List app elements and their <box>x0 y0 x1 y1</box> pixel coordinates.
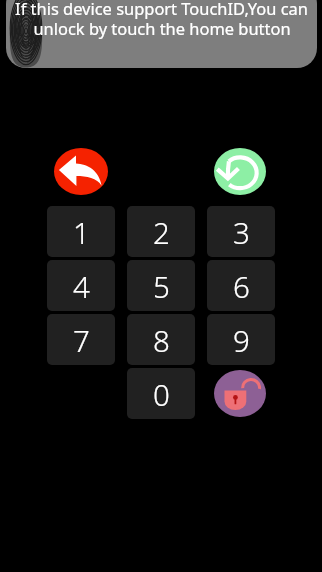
staticText: 7 <box>73 320 90 360</box>
staticText: 9 <box>233 320 250 360</box>
staticText: If this device support TouchID,You can <box>15 0 308 19</box>
button[interactable]: 3 <box>207 206 275 257</box>
staticText: 5 <box>153 266 170 306</box>
staticText: 3 <box>233 212 250 252</box>
staticText: 1 <box>73 212 90 252</box>
button[interactable]: 8 <box>127 314 195 365</box>
staticText: 6 <box>233 266 250 306</box>
button[interactable]: Refresh <box>214 148 266 195</box>
staticText: unlock by touch the home button <box>33 17 291 39</box>
staticText: 2 <box>153 212 170 252</box>
button[interactable]: 9 <box>207 314 275 365</box>
staticText: 8 <box>153 320 170 360</box>
button[interactable]: 4 <box>47 260 115 311</box>
button[interactable]: Unlock <box>214 370 266 417</box>
button[interactable]: 7 <box>47 314 115 365</box>
staticText: 0 <box>153 374 170 414</box>
staticText: 4 <box>73 266 90 306</box>
button[interactable]: 1 <box>47 206 115 257</box>
button[interactable]: Back <box>54 148 108 195</box>
button[interactable]: 6 <box>207 260 275 311</box>
button[interactable]: 2 <box>127 206 195 257</box>
button[interactable]: 0 <box>127 368 195 419</box>
button[interactable]: 5 <box>127 260 195 311</box>
